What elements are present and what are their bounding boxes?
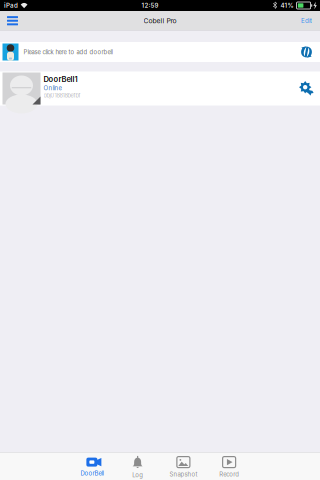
button[interactable]: DoorBell xyxy=(69,452,115,480)
staticText: Edit xyxy=(301,17,312,24)
button[interactable]: DoorBell1 xyxy=(0,71,320,105)
button[interactable]: Please click here to add doorbell xyxy=(0,42,320,62)
button[interactable]: Menu xyxy=(0,11,25,30)
staticText: Please click here to add doorbell xyxy=(23,48,112,56)
staticText: obj018818befbf xyxy=(43,92,80,99)
button[interactable]: Record xyxy=(206,452,252,480)
button[interactable]: Snapshot xyxy=(160,452,206,480)
staticText: Cobell Pro xyxy=(143,17,176,25)
button[interactable]: Log xyxy=(115,452,161,480)
staticText: DoorBell xyxy=(80,470,103,477)
staticText: iPad xyxy=(4,2,18,9)
staticText: Record xyxy=(219,471,239,478)
staticText: 41% xyxy=(280,2,293,9)
staticText: Log xyxy=(132,471,143,479)
staticText: Online xyxy=(43,84,61,92)
button[interactable]: Edit xyxy=(293,11,320,30)
staticText: Snapshot xyxy=(169,471,197,478)
staticText: DoorBell1 xyxy=(43,75,77,84)
staticText: 12:59 xyxy=(141,2,158,9)
